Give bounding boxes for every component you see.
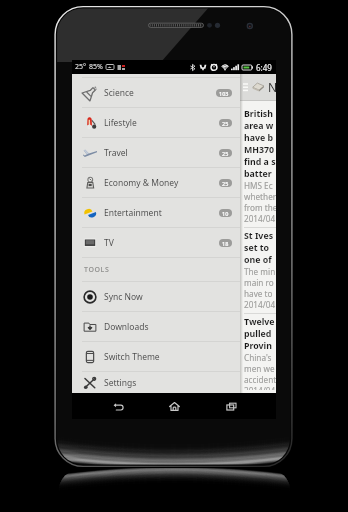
staticText: 25	[222, 150, 229, 157]
staticText: pulled	[244, 328, 272, 340]
button[interactable]: Settings	[72, 371, 240, 393]
button[interactable]: Economy & Money	[72, 167, 240, 197]
button[interactable]: Back	[107, 395, 129, 417]
staticText: accident	[244, 374, 276, 385]
staticText: 25	[222, 180, 229, 187]
button[interactable]: Downloads	[72, 311, 240, 341]
staticText: Settings	[104, 377, 137, 389]
button[interactable]: TV	[72, 227, 240, 257]
staticText: Economy & Money	[104, 177, 179, 189]
staticText: men we	[244, 363, 275, 374]
button[interactable]: Entertainment	[72, 197, 240, 227]
staticText: main ro	[244, 277, 274, 288]
staticText: The min	[244, 266, 276, 277]
staticText: from the	[244, 202, 276, 213]
staticText: 85%	[89, 62, 103, 72]
staticText: one of	[244, 254, 272, 266]
staticText: 2014/04	[244, 299, 276, 310]
staticText: St Ives	[244, 230, 274, 242]
staticText: set to	[244, 242, 270, 254]
button[interactable]: Lifestyle	[72, 107, 240, 137]
button[interactable]: Open navigation drawer	[241, 74, 250, 100]
staticText: Provin	[244, 340, 272, 352]
staticText: British	[244, 108, 273, 120]
staticText: Twelve	[244, 316, 275, 328]
staticText: 103	[219, 90, 229, 97]
staticText: find a s	[244, 156, 276, 168]
staticText: 2014/04	[244, 213, 276, 224]
staticText: have to	[244, 288, 273, 299]
button[interactable]: Sync Now	[72, 281, 240, 311]
staticText: 25	[222, 120, 229, 127]
button[interactable]: Travel	[72, 137, 240, 167]
staticText: MH370	[244, 144, 275, 156]
staticText: TOOLS	[84, 265, 110, 275]
staticText: whether	[244, 191, 276, 202]
staticText: have b	[244, 132, 274, 144]
staticText: Switch Theme	[104, 351, 160, 363]
staticText: Sync Now	[104, 291, 143, 303]
staticText: TV	[104, 237, 114, 249]
button[interactable]: Home	[163, 395, 185, 417]
staticText: 10	[222, 210, 229, 217]
staticText: Lifestyle	[104, 117, 137, 129]
staticText: Entertainment	[104, 207, 162, 219]
button[interactable]: Science	[72, 77, 240, 107]
staticText: batter	[244, 168, 272, 180]
staticText: 6:49	[256, 62, 272, 73]
staticText: 25°	[75, 62, 87, 72]
staticText: area w	[244, 120, 274, 132]
staticText: Travel	[104, 147, 128, 159]
staticText: N	[268, 79, 276, 95]
staticText: 18	[222, 240, 229, 247]
button[interactable]: Recent apps	[220, 395, 242, 417]
staticText: Downloads	[104, 321, 149, 333]
staticText: China's	[244, 352, 272, 363]
staticText: Science	[104, 87, 134, 99]
staticText: 2014/04	[244, 385, 276, 390]
staticText: HMS Ec	[244, 180, 273, 191]
button[interactable]: Switch Theme	[72, 341, 240, 371]
